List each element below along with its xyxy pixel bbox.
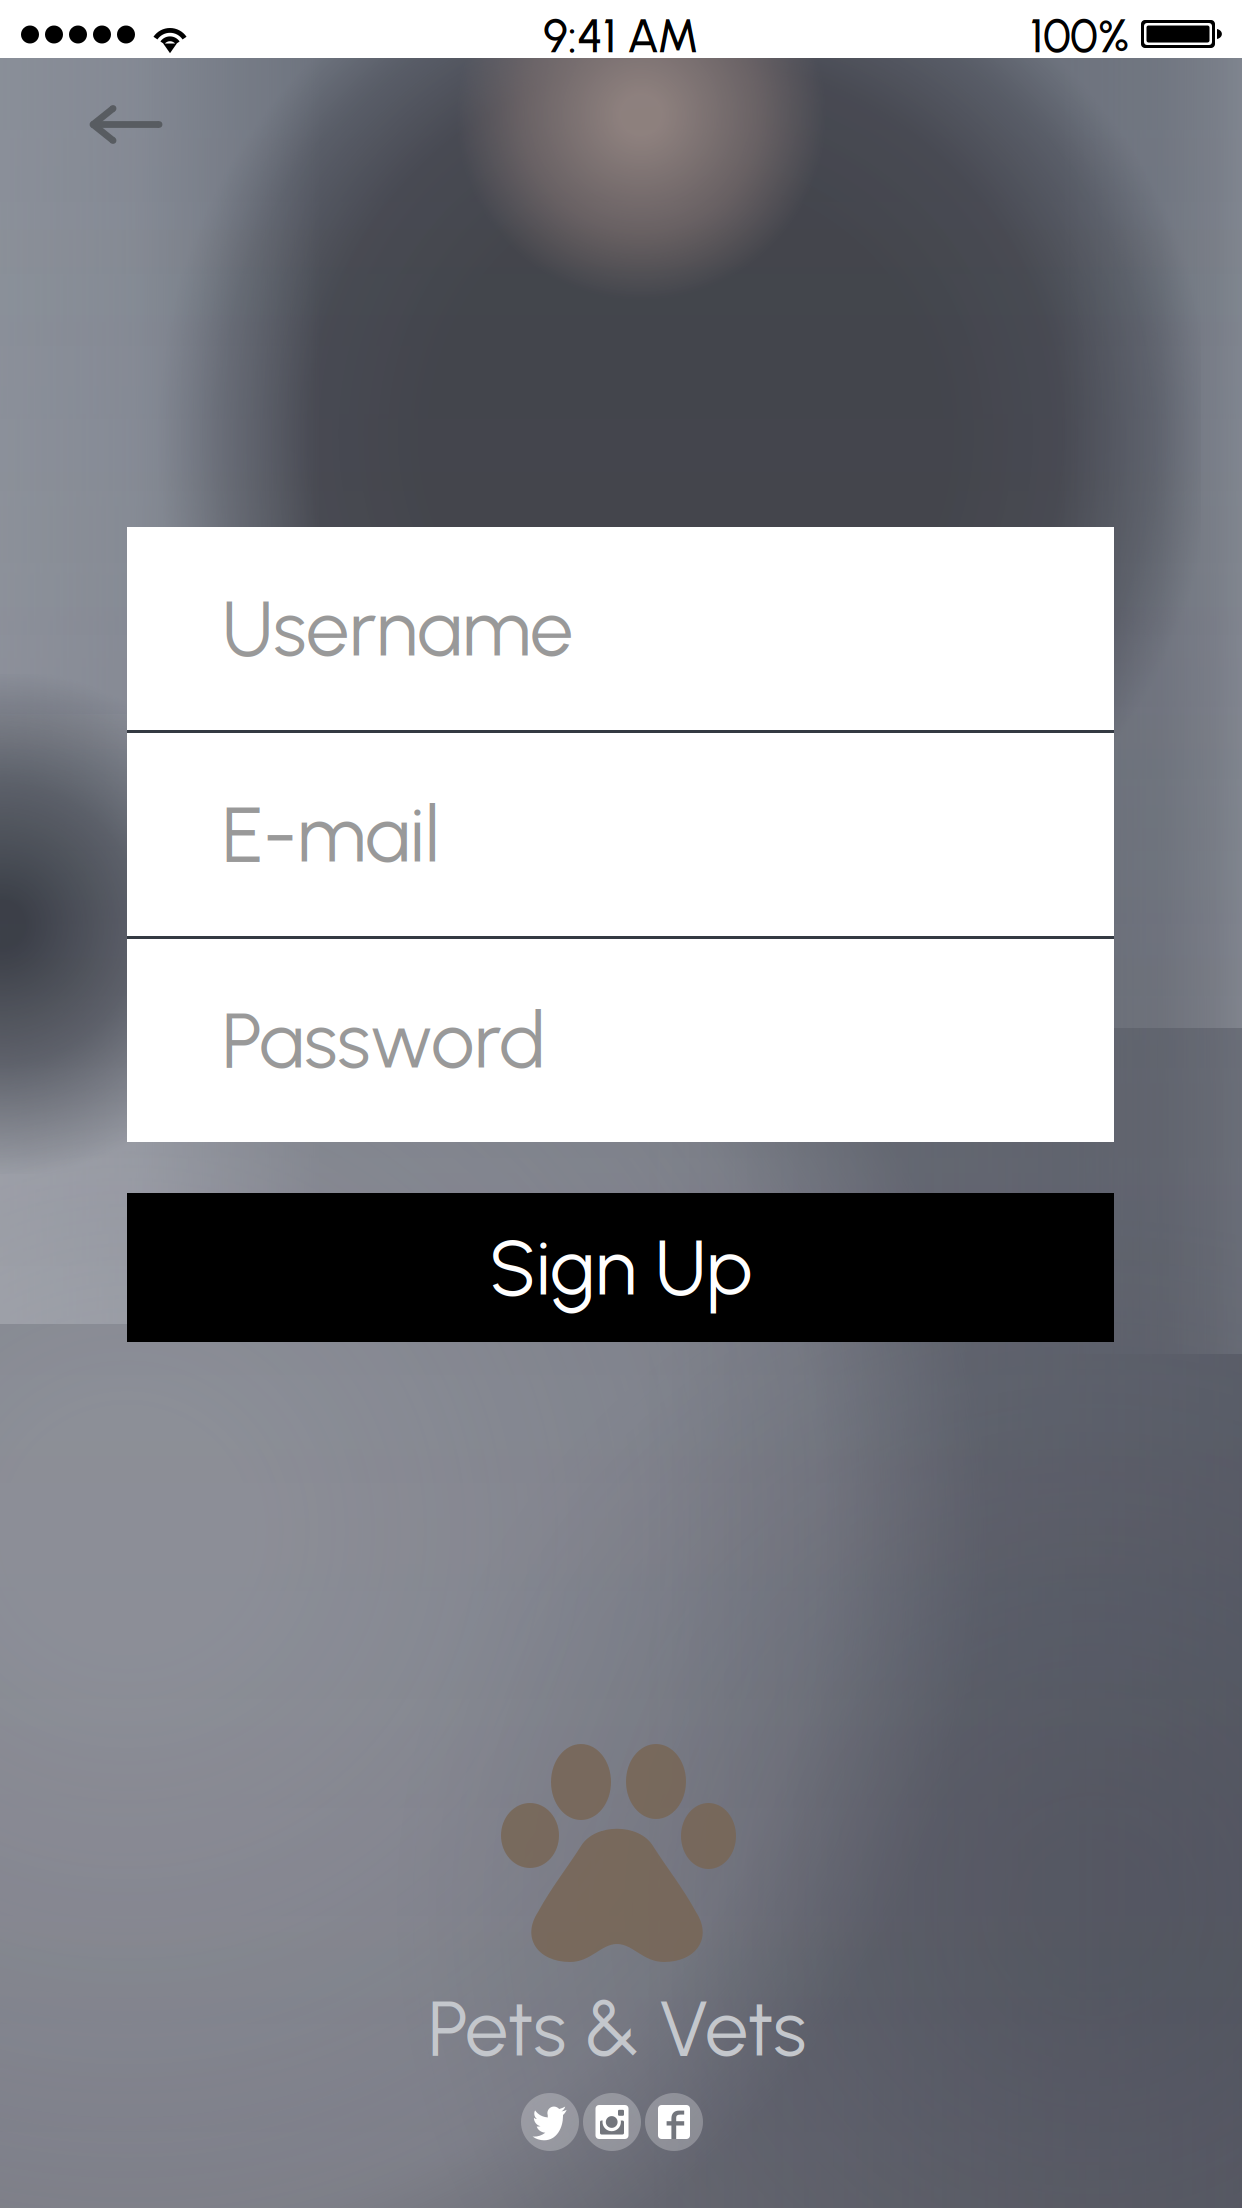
- button[interactable]: Back: [58, 74, 194, 175]
- staticText: E-mail: [222, 788, 440, 881]
- staticText: Username: [222, 582, 573, 675]
- staticText: Pets & Vets: [428, 1982, 806, 2075]
- button[interactable]: Sign Up: [127, 1193, 1114, 1342]
- staticText: 100%: [1030, 8, 1129, 64]
- button[interactable]: Facebook: [645, 2093, 703, 2151]
- staticText: Sign Up: [489, 1221, 752, 1314]
- button[interactable]: Instagram: [583, 2093, 641, 2151]
- staticText: Password: [222, 994, 546, 1087]
- staticText: 9:41 AM: [543, 8, 699, 64]
- button[interactable]: Twitter: [521, 2093, 579, 2151]
